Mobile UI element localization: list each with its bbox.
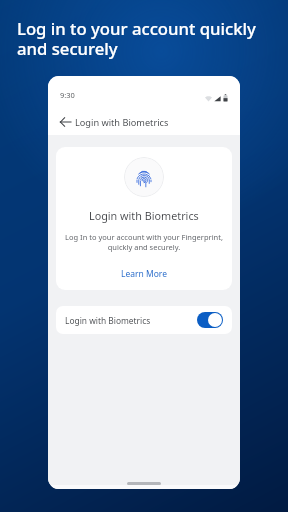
staticText: Log in to your account quickly and secur… (17, 17, 256, 60)
staticText: Login with Biometrics (89, 208, 199, 223)
button[interactable]: Login with Biometrics (56, 306, 232, 334)
staticText: Login with Biometrics (75, 116, 169, 129)
button[interactable]: Learn More (117, 267, 171, 281)
staticText: Learn More (121, 268, 167, 280)
staticText: Login with Biometrics (65, 315, 151, 326)
button[interactable]: Back (58, 114, 72, 130)
staticText: 9:30 (60, 90, 75, 100)
staticText: Log In to your account with your Fingerp… (56, 232, 232, 252)
